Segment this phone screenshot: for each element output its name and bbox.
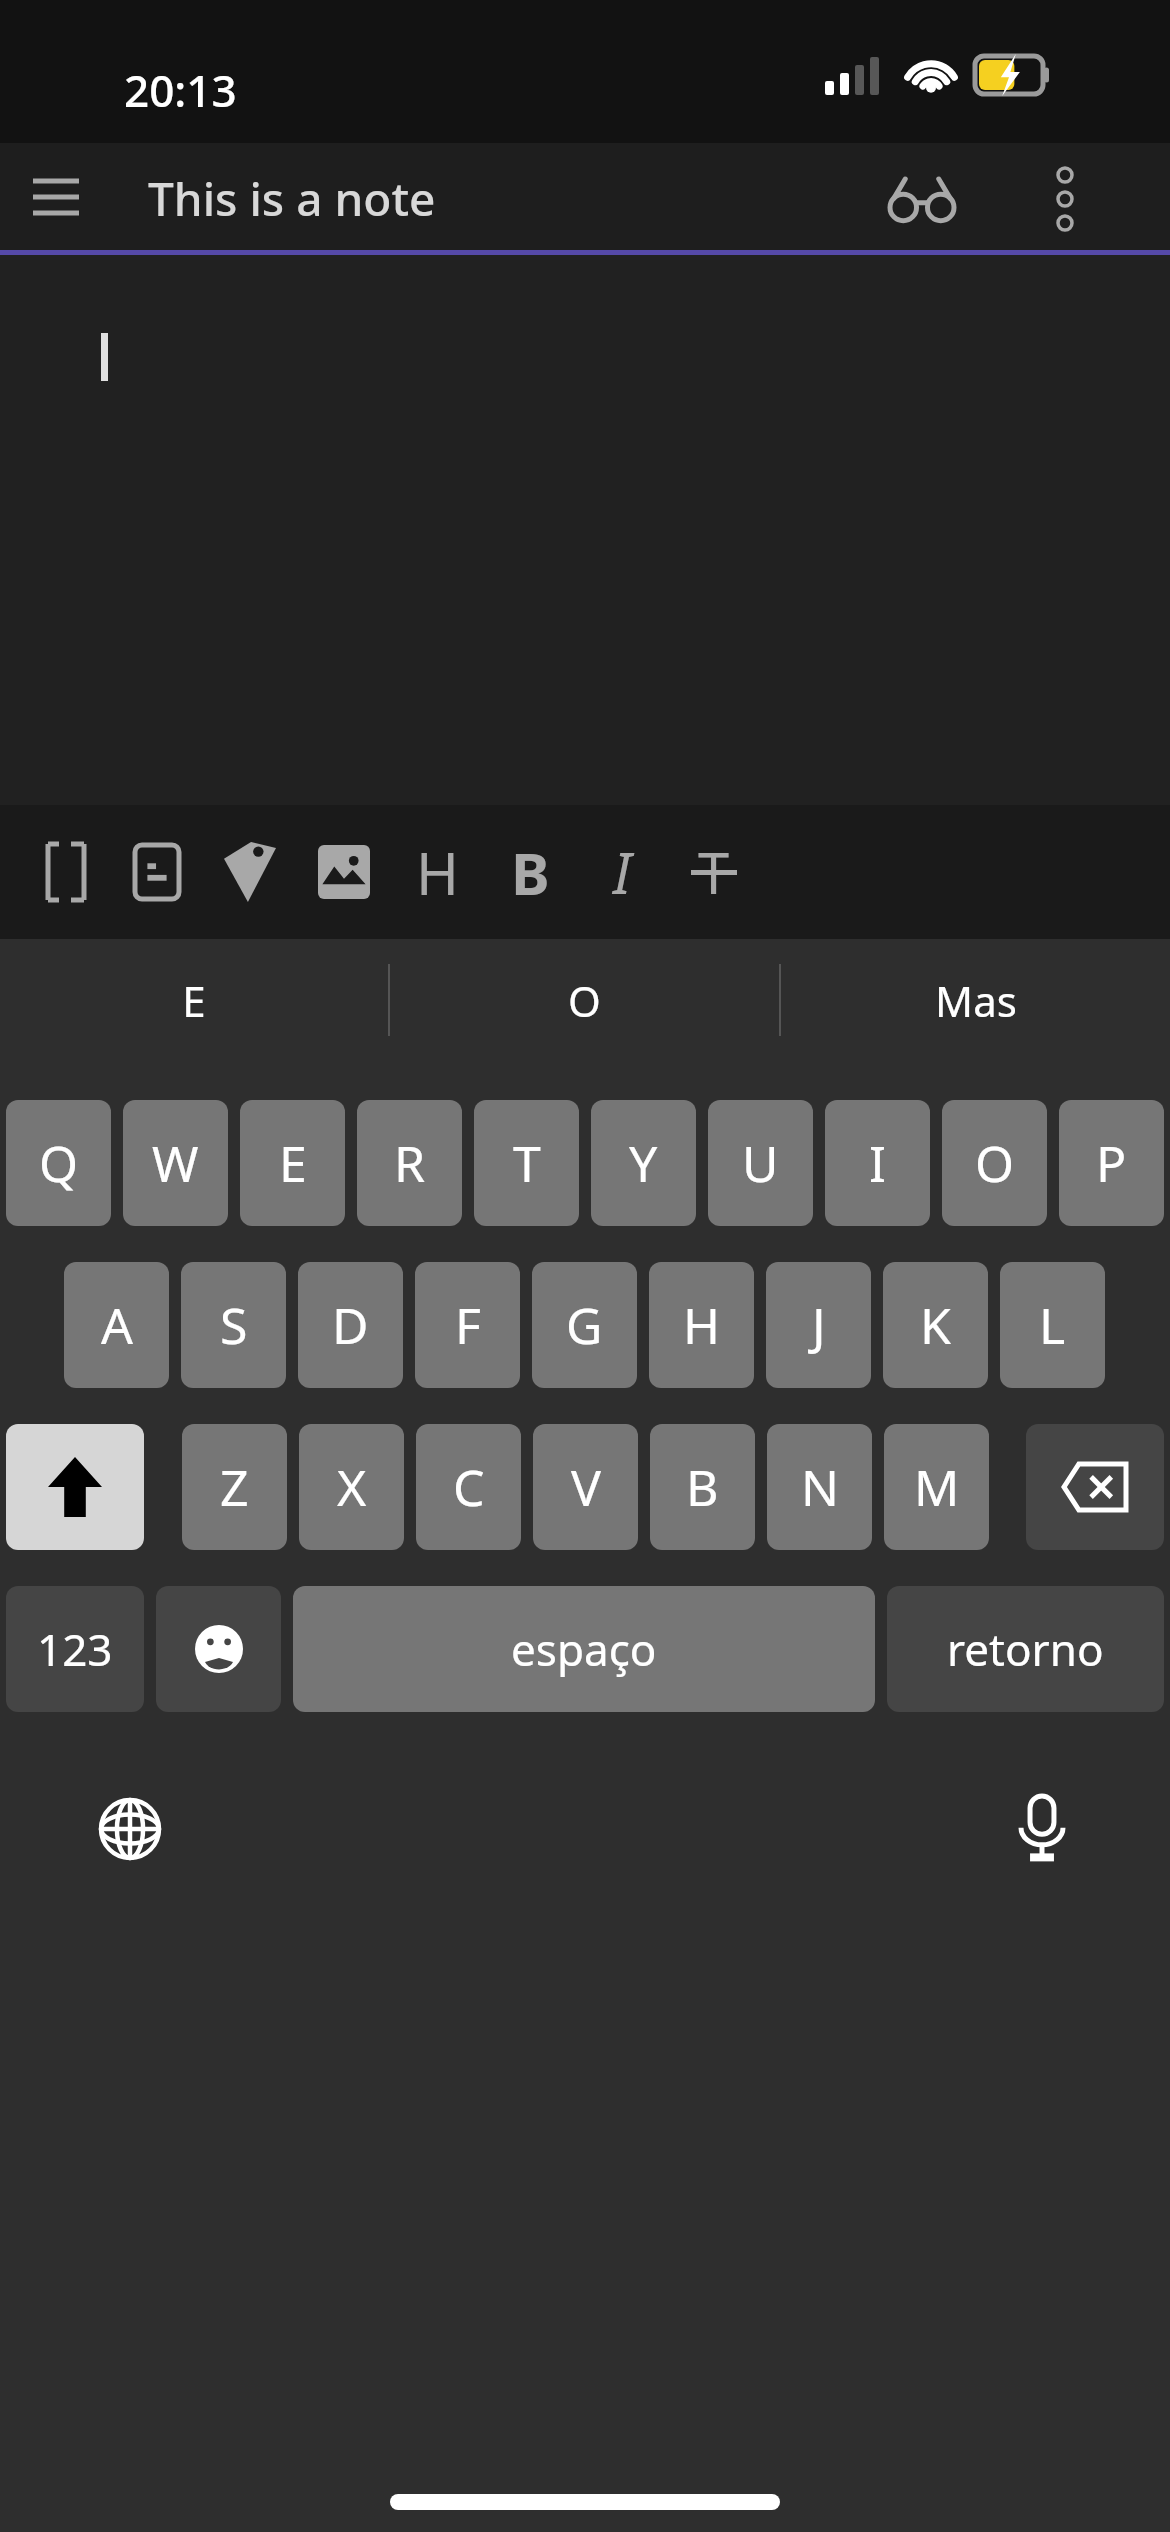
button[interactable]: Code block: [18, 815, 114, 929]
staticText: P: [1096, 1129, 1127, 1197]
staticText: G: [566, 1291, 603, 1359]
staticText: N: [801, 1453, 839, 1521]
button[interactable]: Reading mode: [872, 149, 972, 249]
button[interactable]: V: [533, 1424, 638, 1550]
staticText: D: [332, 1291, 369, 1359]
button[interactable]: A: [64, 1262, 169, 1388]
button[interactable]: B: [650, 1424, 755, 1550]
button[interactable]: retorno: [887, 1586, 1164, 1712]
staticText: Y: [629, 1129, 658, 1197]
staticText: S: [220, 1291, 248, 1359]
button[interactable]: Insert note: [109, 815, 205, 929]
staticText: C: [453, 1453, 485, 1521]
button[interactable]: Voice input: [990, 1777, 1094, 1881]
button[interactable]: E: [240, 1100, 345, 1226]
staticText: retorno: [947, 1619, 1104, 1679]
button[interactable]: C: [416, 1424, 521, 1550]
button[interactable]: X: [299, 1424, 404, 1550]
staticText: L: [1039, 1291, 1066, 1359]
button[interactable]: S: [181, 1262, 286, 1388]
button[interactable]: Italic: [574, 815, 670, 929]
staticText: B: [686, 1453, 719, 1521]
staticText: R: [394, 1129, 426, 1197]
staticText: Z: [220, 1453, 249, 1521]
button[interactable]: D: [298, 1262, 403, 1388]
staticText: A: [101, 1291, 133, 1359]
button[interactable]: P: [1059, 1100, 1164, 1226]
button[interactable]: Q: [6, 1100, 111, 1226]
button[interactable]: Mas: [781, 939, 1170, 1061]
staticText: O: [568, 972, 601, 1029]
button[interactable]: W: [123, 1100, 228, 1226]
button[interactable]: Bold: [482, 815, 578, 929]
button[interactable]: F: [415, 1262, 520, 1388]
staticText: V: [571, 1453, 601, 1521]
button[interactable]: L: [1000, 1262, 1105, 1388]
staticText: B: [511, 833, 550, 912]
button[interactable]: Change keyboard language: [78, 1777, 182, 1881]
staticText: K: [920, 1291, 951, 1359]
button[interactable]: N: [767, 1424, 872, 1550]
button[interactable]: K: [883, 1262, 988, 1388]
staticText: H: [683, 1291, 721, 1359]
button[interactable]: More options: [1015, 149, 1115, 249]
button[interactable]: Menu: [8, 149, 104, 245]
staticText: M: [914, 1453, 960, 1521]
button[interactable]: J: [766, 1262, 871, 1388]
staticText: E: [279, 1129, 307, 1197]
button[interactable]: T: [474, 1100, 579, 1226]
staticText: E: [182, 972, 206, 1029]
button[interactable]: E: [0, 939, 388, 1061]
staticText: F: [455, 1291, 481, 1359]
button[interactable]: O: [390, 939, 779, 1061]
button[interactable]: Z: [182, 1424, 287, 1550]
staticText: W: [152, 1129, 199, 1197]
button[interactable]: R: [357, 1100, 462, 1226]
button[interactable]: Strikethrough: [666, 815, 762, 929]
staticText: T: [698, 834, 730, 910]
staticText: 20:13: [124, 60, 237, 120]
button[interactable]: M: [884, 1424, 989, 1550]
button[interactable]: Numbers: [6, 1586, 144, 1712]
button[interactable]: I: [825, 1100, 930, 1226]
button[interactable]: Emoji: [156, 1586, 281, 1712]
staticText: espaço: [511, 1619, 657, 1679]
button[interactable]: O: [942, 1100, 1047, 1226]
staticText: I: [613, 834, 632, 910]
button[interactable]: Insert image: [296, 815, 392, 929]
button[interactable]: H: [649, 1262, 754, 1388]
staticText: This is a note: [148, 167, 436, 230]
staticText: T: [513, 1129, 541, 1197]
button[interactable]: Add tag: [202, 815, 298, 929]
button[interactable]: espaço: [293, 1586, 875, 1712]
button[interactable]: G: [532, 1262, 637, 1388]
staticText: I: [869, 1129, 886, 1197]
staticText: U: [742, 1129, 779, 1197]
staticText: 123: [37, 1619, 113, 1679]
button[interactable]: Heading: [389, 815, 485, 929]
button[interactable]: Shift: [6, 1424, 144, 1550]
staticText: O: [975, 1129, 1015, 1197]
staticText: Q: [39, 1129, 79, 1197]
staticText: J: [812, 1291, 826, 1359]
staticText: Mas: [935, 972, 1017, 1029]
staticText: H: [416, 833, 459, 912]
button[interactable]: Y: [591, 1100, 696, 1226]
button[interactable]: Backspace: [1026, 1424, 1164, 1550]
button[interactable]: U: [708, 1100, 813, 1226]
staticText: X: [337, 1453, 367, 1521]
